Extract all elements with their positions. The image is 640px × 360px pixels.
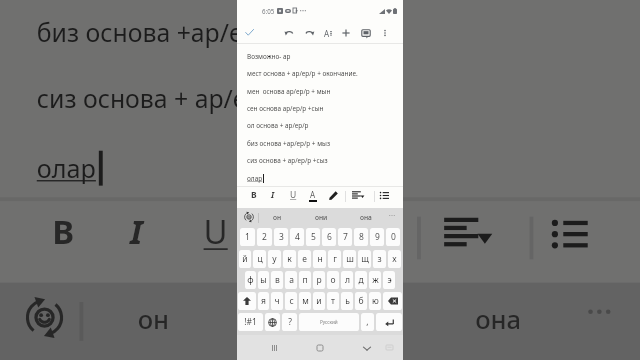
button[interactable]: она [349, 208, 383, 227]
button[interactable]: о [327, 271, 339, 289]
staticText: э [387, 274, 392, 286]
button[interactable]: Hide keyboard [357, 335, 377, 360]
button[interactable]: 8 [354, 228, 368, 246]
button[interactable]: More options [377, 21, 393, 44]
button[interactable]: е [298, 250, 311, 268]
button[interactable]: д [355, 271, 367, 289]
button[interactable]: к [283, 250, 296, 268]
button[interactable]: й [239, 250, 251, 268]
button[interactable]: 5 [306, 228, 320, 246]
staticText: сиз основа + ар/ер/р +сыз [37, 81, 351, 116]
button[interactable]: ь [341, 292, 353, 310]
button[interactable]: Text colour [304, 186, 322, 204]
button[interactable]: они [258, 283, 390, 356]
button[interactable]: с [285, 292, 297, 310]
button[interactable]: он [87, 283, 219, 356]
button[interactable]: ф [245, 271, 256, 289]
button[interactable]: Redo [301, 21, 317, 44]
button[interactable]: ю [369, 292, 381, 310]
button[interactable]: Bold [29, 197, 99, 267]
button[interactable]: они [304, 208, 338, 227]
button[interactable]: Alignment [348, 186, 366, 204]
staticText: I [271, 189, 275, 201]
button[interactable]: я [258, 292, 269, 310]
button[interactable]: List [375, 186, 393, 204]
button[interactable]: Enter [376, 313, 402, 331]
button[interactable]: у [268, 250, 281, 268]
button[interactable]: Bold [245, 186, 263, 204]
button[interactable]: 1 [240, 228, 255, 246]
button[interactable]: 2 [257, 228, 272, 246]
button[interactable]: л [341, 271, 353, 289]
button[interactable]: Italic [103, 197, 172, 267]
button[interactable]: Highlight [335, 197, 405, 267]
button[interactable]: ы [258, 271, 269, 289]
button[interactable]: Italic [264, 186, 282, 204]
button[interactable]: ж [369, 271, 381, 289]
button[interactable]: 7 [338, 228, 352, 246]
staticText: сен основа ар/ер/р +сын [247, 104, 324, 113]
button[interactable]: ц [253, 250, 266, 268]
button[interactable]: ч [271, 292, 283, 310]
staticText: он [273, 213, 282, 222]
button[interactable]: м [299, 292, 311, 310]
button[interactable]: р [313, 271, 325, 289]
button[interactable]: х [388, 250, 401, 268]
staticText: 6:05 [262, 7, 275, 15]
staticText: они [315, 213, 328, 222]
button[interactable]: Highlight [324, 186, 342, 204]
staticText: р [316, 274, 322, 286]
button[interactable]: , [361, 313, 374, 331]
button[interactable]: Emoji [240, 208, 258, 226]
button[interactable]: Underline [284, 186, 302, 204]
staticText: U [290, 189, 297, 201]
button[interactable]: в [271, 271, 283, 289]
button[interactable]: н [313, 250, 326, 268]
staticText: 8 [359, 231, 364, 243]
button[interactable]: !#1 [238, 313, 263, 331]
button[interactable]: он [260, 208, 294, 227]
button[interactable]: More suggestions [385, 208, 399, 222]
button[interactable]: Alignment [429, 197, 498, 267]
staticText: у [272, 253, 277, 265]
button[interactable]: Underline [180, 197, 250, 267]
button[interactable]: 9 [370, 228, 384, 246]
button[interactable]: Backspace [383, 292, 402, 310]
button[interactable]: и [313, 292, 325, 310]
button[interactable]: Space [299, 313, 359, 331]
button[interactable]: ш [343, 250, 356, 268]
button[interactable]: Done [241, 21, 257, 44]
button[interactable]: Emoji [10, 283, 79, 352]
staticText: й [242, 253, 248, 265]
button[interactable]: б [355, 292, 367, 310]
button[interactable]: з [373, 250, 386, 268]
button[interactable]: она [432, 283, 564, 356]
button[interactable]: г [328, 250, 341, 268]
button[interactable]: т [327, 292, 339, 310]
button[interactable]: 3 [274, 228, 288, 246]
button[interactable]: э [383, 271, 395, 289]
button[interactable]: 4 [290, 228, 304, 246]
staticText: ь [345, 295, 350, 307]
button[interactable]: Insert [338, 21, 354, 44]
button[interactable]: Text colour [258, 197, 328, 267]
button[interactable]: Recent apps [264, 335, 284, 360]
staticText: 9 [375, 231, 380, 243]
button[interactable]: а [285, 271, 297, 289]
button[interactable]: п [299, 271, 311, 289]
button[interactable]: Change language [265, 313, 280, 331]
button[interactable]: Comment [358, 21, 374, 44]
staticText: биз основа +ар/ер/р + мыз [247, 139, 331, 148]
button[interactable]: List [533, 197, 603, 267]
staticText: мен основа ар/ер/р + мын [247, 87, 331, 96]
button[interactable]: щ [358, 250, 371, 268]
button[interactable]: Undo [281, 21, 297, 44]
button[interactable]: 0 [386, 228, 400, 246]
button[interactable]: Home [310, 335, 330, 360]
button[interactable]: Text formatting [320, 21, 336, 44]
button[interactable]: ? [282, 313, 297, 331]
button[interactable]: Shift [238, 292, 256, 310]
button[interactable]: 6 [322, 228, 336, 246]
staticText: 5 [311, 231, 316, 243]
